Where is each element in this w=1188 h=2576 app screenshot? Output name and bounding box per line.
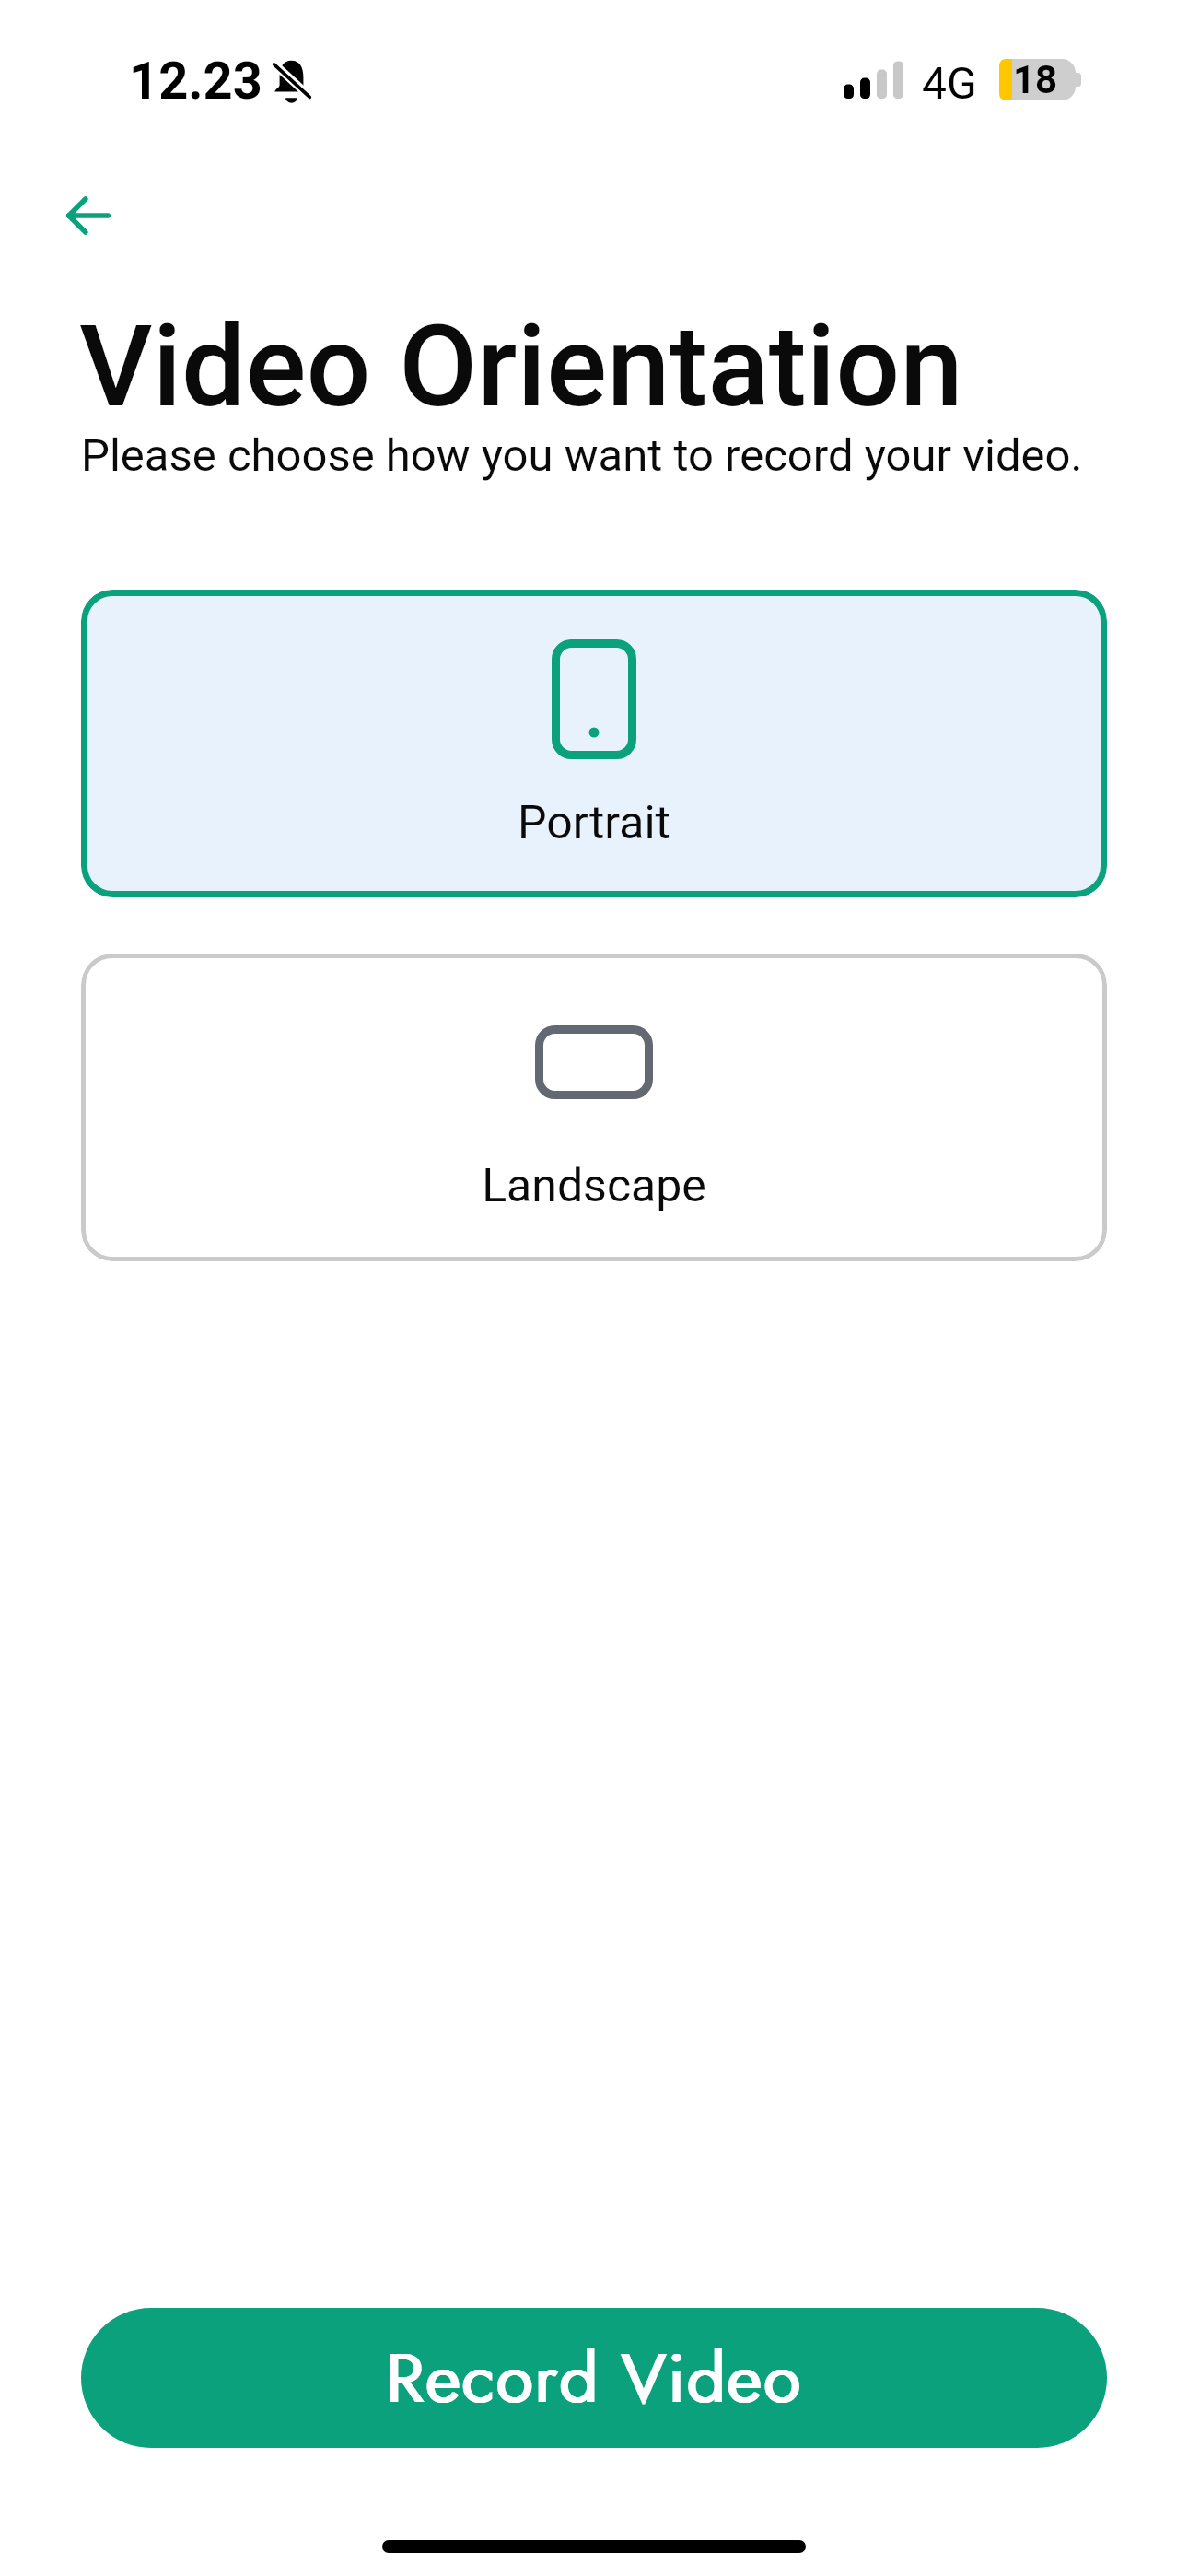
button[interactable]: Portrait	[81, 590, 1107, 897]
staticText: Record Video	[386, 2329, 802, 2428]
staticText: 12.23	[129, 51, 262, 111]
button[interactable]: Record Video	[81, 2308, 1107, 2448]
staticText: Portrait	[518, 796, 670, 850]
staticText: Please choose how you want to record you…	[81, 429, 1083, 482]
staticText: 18	[1013, 57, 1058, 102]
other: Notifications muted	[272, 59, 311, 100]
staticText: 4G	[922, 57, 977, 109]
staticText: Landscape	[482, 1159, 706, 1213]
button[interactable]: Back	[44, 177, 133, 254]
staticText: Video Orientation	[79, 300, 963, 433]
staticText: Record Video	[387, 2329, 803, 2428]
staticText: Record Video	[385, 2329, 801, 2428]
button[interactable]: Landscape	[81, 954, 1107, 1261]
